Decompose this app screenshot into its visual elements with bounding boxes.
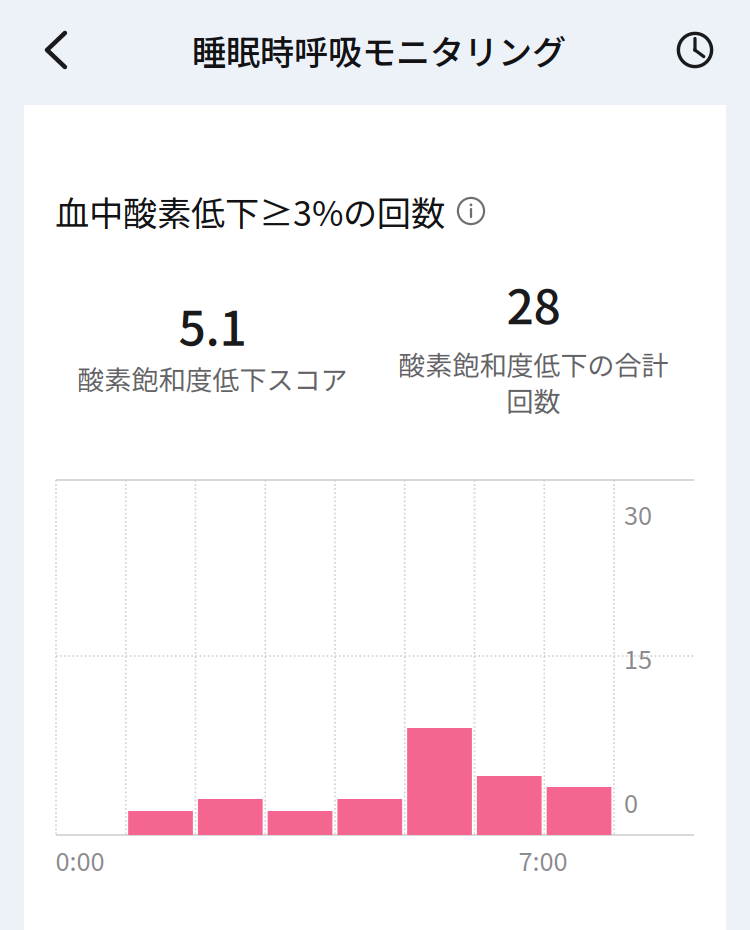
staticText: 睡眠時呼吸モニタリング xyxy=(192,25,566,75)
staticText: 30 xyxy=(624,496,652,532)
staticText: 7:00 xyxy=(518,842,567,878)
staticText: 血中酸素低下≥3%の回数 xyxy=(55,186,445,236)
staticText: 0:00 xyxy=(55,842,104,878)
staticText: 0 xyxy=(624,784,638,820)
staticText: 酸素飽和度低下の合計 xyxy=(398,344,668,383)
button[interactable]: History xyxy=(658,13,732,87)
staticText: 28 xyxy=(506,269,560,338)
button[interactable]: Back xyxy=(19,13,93,87)
staticText: 5.1 xyxy=(178,290,246,360)
staticText: 酸素飽和度低下スコア xyxy=(77,359,347,398)
staticText: 15 xyxy=(624,640,652,676)
staticText: 回数 xyxy=(506,380,560,419)
button[interactable]: More information xyxy=(449,189,493,233)
